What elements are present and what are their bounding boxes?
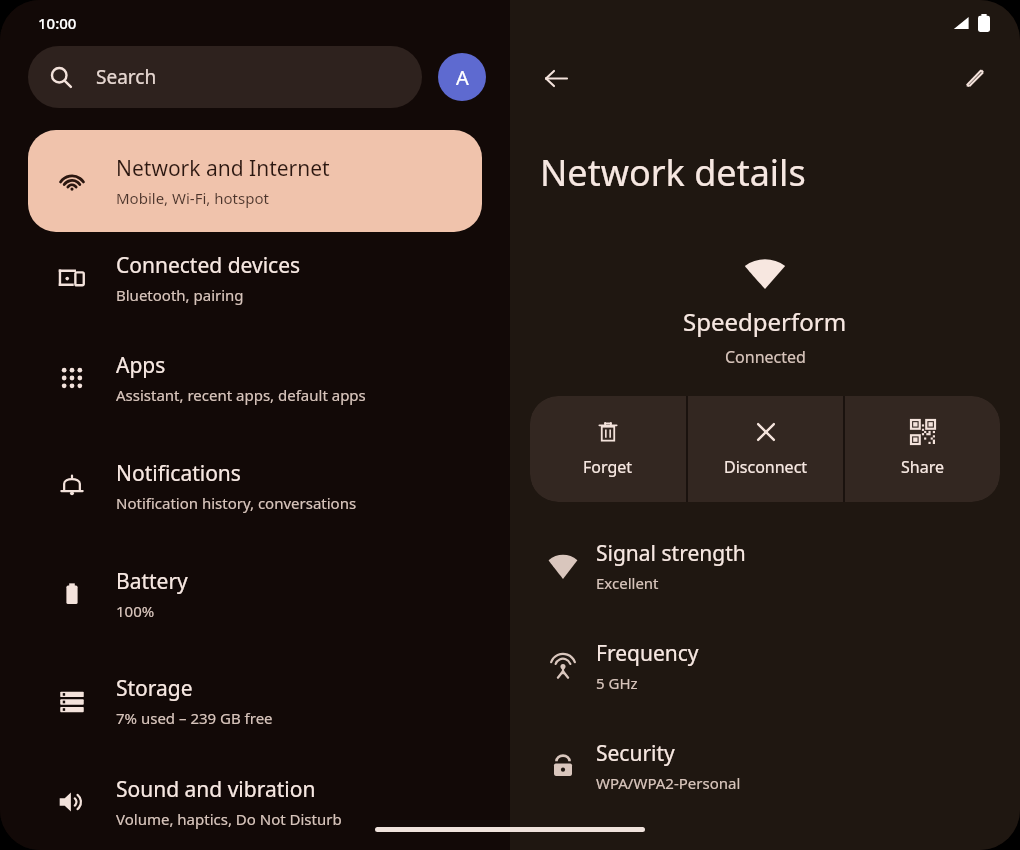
staticText: Connected [725, 346, 806, 368]
staticText: Signal strength [596, 539, 746, 568]
staticText: Volume, haptics, Do Not Disturb [116, 809, 342, 829]
staticText: Connected devices [116, 251, 301, 280]
staticText: Battery [116, 567, 188, 596]
staticText: 100% [116, 601, 155, 621]
staticText: Disconnect [724, 456, 808, 478]
button[interactable]: Frequency [530, 616, 1000, 716]
button[interactable]: Storage [28, 647, 482, 754]
staticText: Assistant, recent apps, default apps [116, 385, 366, 405]
button[interactable]: Notifications [28, 432, 482, 540]
staticText: Frequency [596, 639, 699, 668]
staticText: 10:00 [38, 13, 77, 33]
staticText: Excellent [596, 573, 659, 593]
staticText: Notification history, conversations [116, 493, 357, 513]
button[interactable]: Apps [28, 324, 482, 432]
button[interactable]: Battery [28, 540, 482, 647]
staticText: Share [901, 456, 944, 478]
staticText: Storage [116, 674, 193, 703]
button[interactable]: Signal strength [530, 516, 1000, 616]
button[interactable]: Back [532, 54, 580, 102]
staticText: Search [96, 64, 157, 90]
button[interactable]: Network and Internet [28, 130, 482, 232]
staticText: Notifications [116, 459, 241, 488]
staticText: 5 GHz [596, 673, 638, 693]
staticText: A [456, 64, 469, 91]
staticText: Speedperform [683, 305, 847, 338]
button[interactable]: Account [438, 53, 486, 101]
button[interactable]: Search [28, 46, 422, 108]
button[interactable]: Edit [950, 54, 998, 102]
button[interactable]: Forget [530, 396, 686, 502]
staticText: Network and Internet [116, 154, 330, 183]
staticText: Apps [116, 351, 166, 380]
button[interactable]: Share [845, 396, 1000, 502]
staticText: Forget [583, 456, 633, 478]
staticText: Network details [540, 148, 806, 197]
staticText: Security [596, 739, 675, 768]
staticText: 7% used – 239 GB free [116, 708, 273, 728]
button[interactable]: Disconnect [688, 396, 843, 502]
staticText: Bluetooth, pairing [116, 285, 244, 305]
staticText: Mobile, Wi-Fi, hotspot [116, 188, 269, 208]
button[interactable]: Connected devices [28, 232, 482, 324]
button[interactable]: Security [530, 716, 1000, 816]
staticText: Sound and vibration [116, 775, 316, 804]
staticText: WPA/WPA2-Personal [596, 773, 741, 793]
button[interactable]: Sound and vibration [28, 754, 482, 850]
